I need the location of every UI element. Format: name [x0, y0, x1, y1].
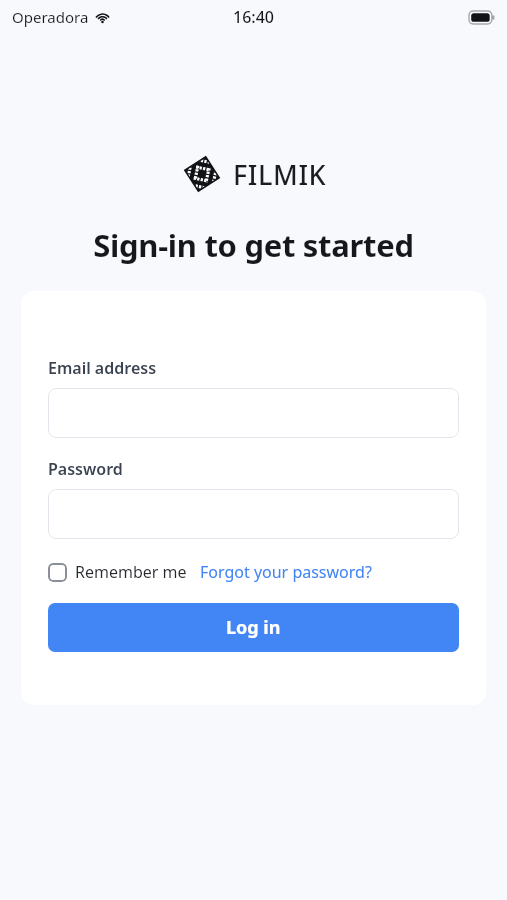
button[interactable]: Log in [48, 603, 459, 652]
staticText: Email address [48, 357, 157, 379]
staticText: Log in [226, 615, 281, 640]
staticText: Sign-in to get started [0, 224, 507, 266]
button[interactable]: Remember me [48, 559, 187, 585]
button[interactable]: Text input field [48, 388, 459, 438]
staticText: Password [48, 458, 123, 480]
staticText: 16:40 [233, 6, 274, 28]
staticText: FILMIK [233, 156, 327, 193]
staticText: Operadora [12, 7, 89, 27]
staticText: Remember me [75, 561, 187, 583]
button[interactable]: Forgot your password? [200, 559, 372, 585]
button[interactable]: Text input field [48, 489, 459, 539]
staticText: Forgot your password? [200, 561, 372, 583]
